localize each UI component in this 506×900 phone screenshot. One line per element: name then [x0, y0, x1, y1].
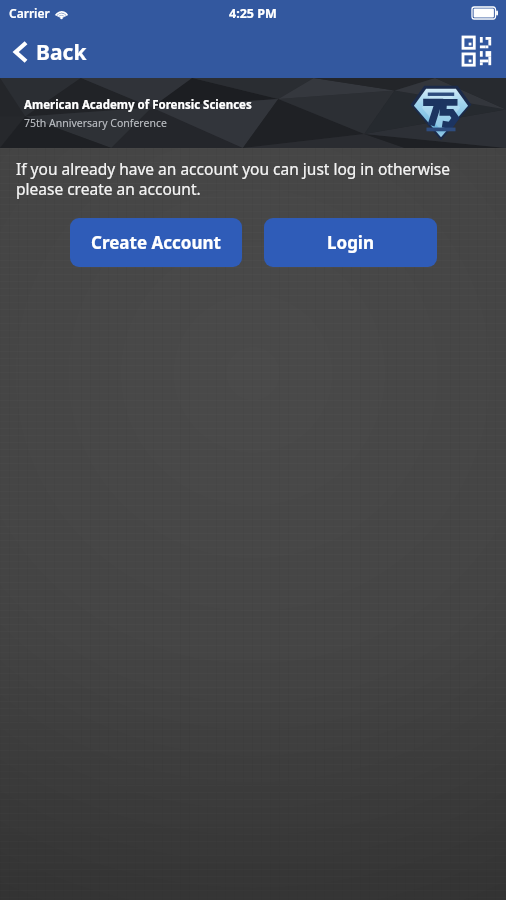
button[interactable]: Back — [0, 26, 101, 78]
button[interactable]: Login — [264, 218, 437, 267]
staticText: If you already have an account you can j… — [16, 158, 492, 200]
staticText: 4:25 PM — [229, 5, 277, 22]
staticText: 75th Anniversary Conference — [24, 116, 167, 130]
staticText: Carrier — [9, 5, 50, 21]
staticText: Login — [327, 231, 375, 254]
staticText: Create Account — [91, 231, 221, 254]
button[interactable]: Create Account — [70, 218, 242, 267]
staticText: American Academy of Forensic Sciences — [24, 97, 252, 113]
button[interactable]: Scan QR code — [450, 26, 506, 78]
staticText: Back — [36, 38, 87, 67]
